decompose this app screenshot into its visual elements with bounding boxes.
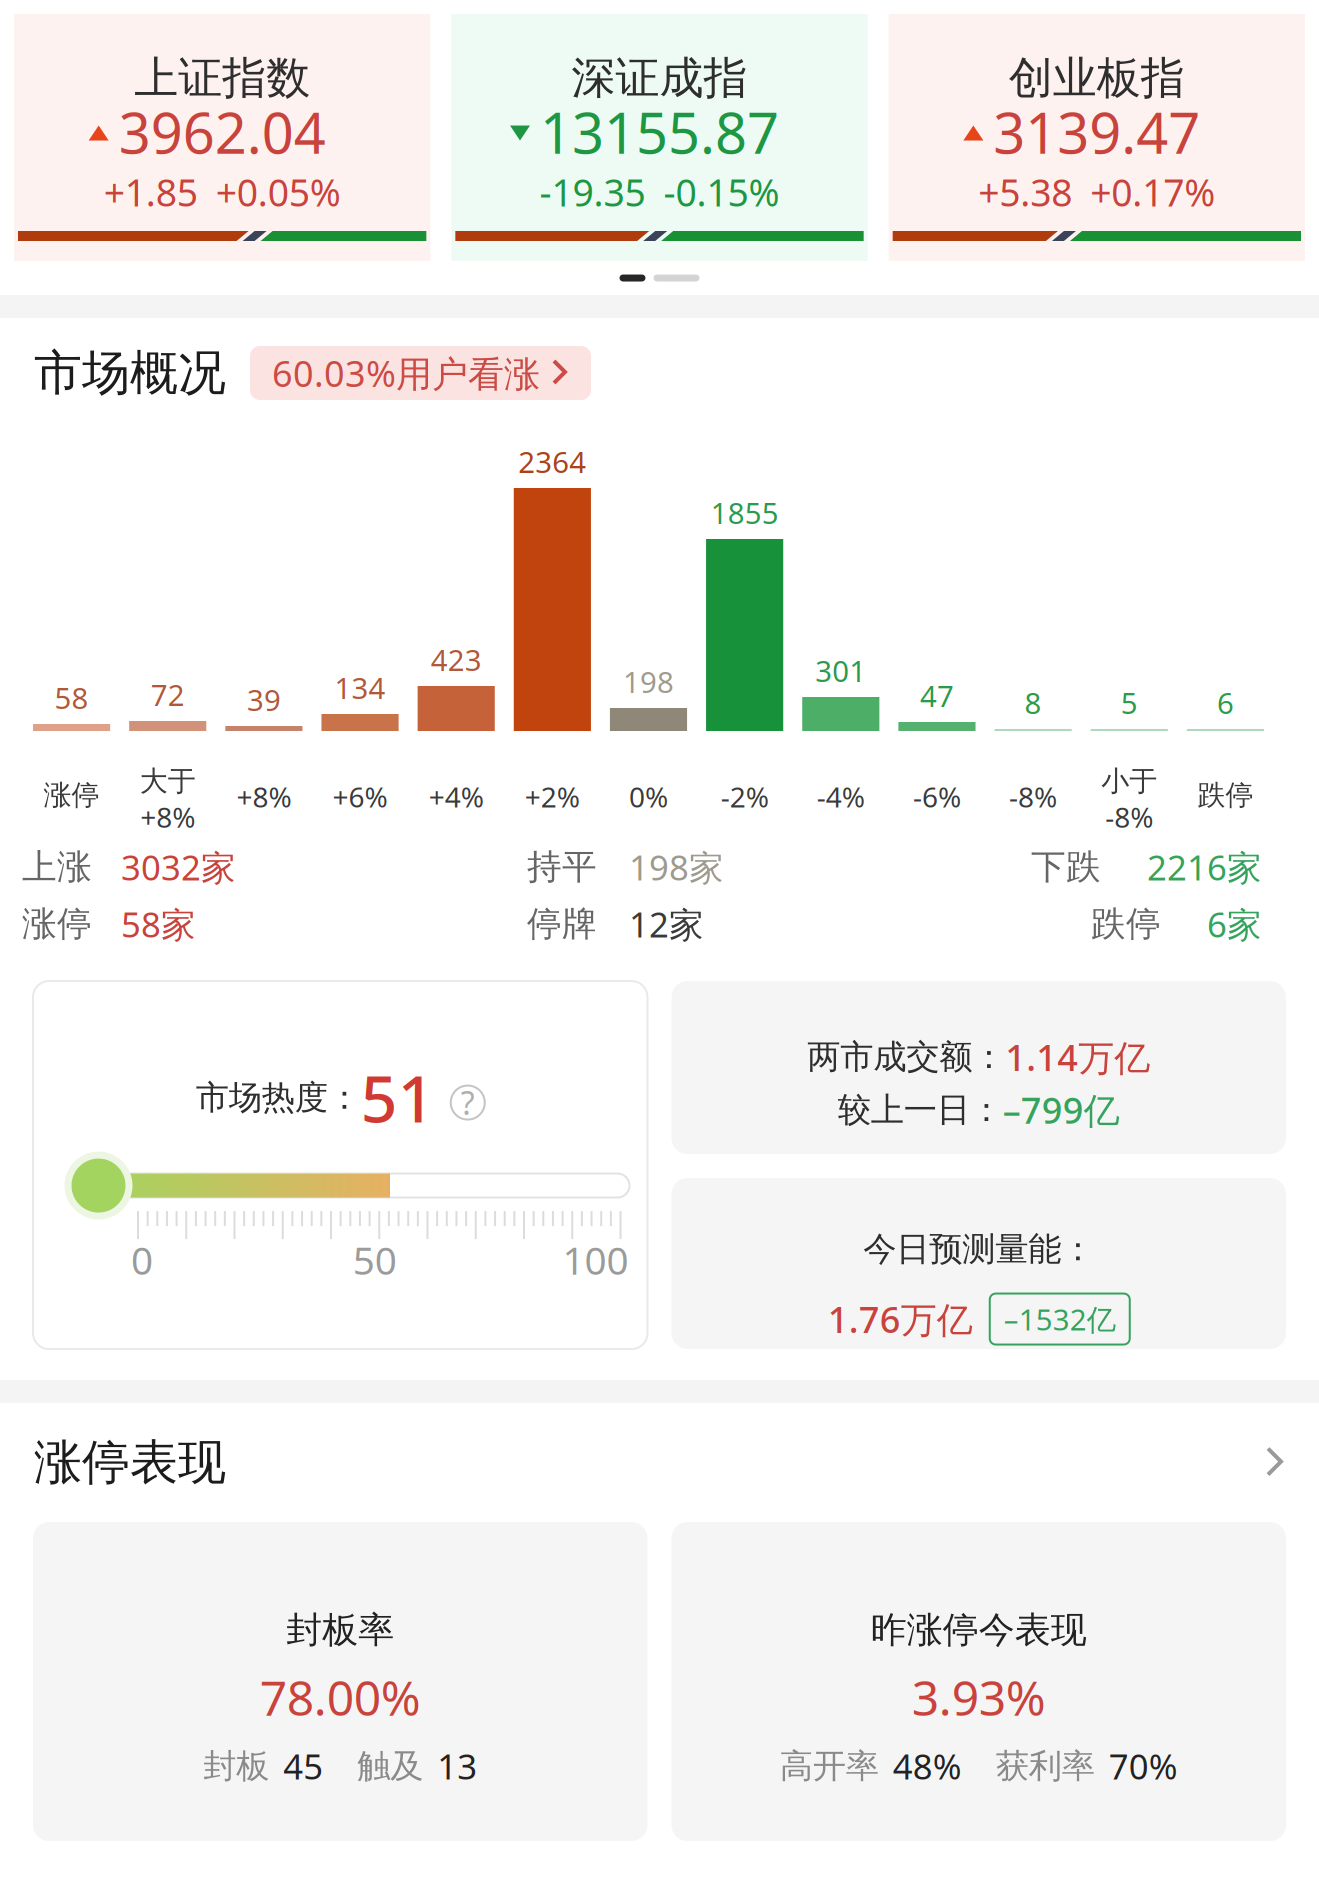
staticText: 上涨	[22, 846, 92, 888]
staticText: 48%	[893, 1743, 962, 1789]
staticText: -2%	[721, 778, 769, 815]
staticText: 市场概况	[34, 343, 226, 402]
staticText: 58家	[121, 901, 196, 947]
staticText: 较上一日：	[838, 1089, 1003, 1130]
staticText: 停牌	[527, 903, 597, 945]
staticText: 2364	[518, 442, 586, 481]
staticText: 13	[437, 1743, 477, 1789]
staticText: 12家	[629, 901, 704, 947]
staticText: ?	[461, 1081, 475, 1124]
staticText: 1855	[711, 493, 779, 532]
staticText: +8%	[140, 798, 195, 836]
staticText: –799亿	[1003, 1086, 1120, 1134]
staticText: 60.03%用户看涨	[272, 349, 540, 397]
staticText: 深证成指	[571, 51, 747, 105]
staticText: 跌停	[1091, 903, 1161, 945]
staticText: +0.05%	[216, 167, 341, 217]
staticText: 高开率	[780, 1746, 879, 1786]
staticText: 大于	[140, 764, 196, 798]
staticText: 423	[431, 640, 482, 679]
staticText: 下跌	[1031, 846, 1101, 888]
staticText: 两市成交额：	[807, 1036, 1005, 1077]
staticText: 市场热度：	[196, 1077, 361, 1118]
button[interactable]: 深证成指	[451, 14, 868, 261]
staticText: 涨停	[44, 778, 100, 812]
staticText: +4%	[429, 778, 484, 815]
staticText: 47	[920, 676, 954, 715]
staticText: 0%	[629, 778, 668, 815]
staticText: 封板率	[286, 1608, 394, 1652]
staticText: 上证指数	[134, 51, 310, 105]
staticText: -0.15%	[663, 167, 779, 217]
staticText: -19.35	[539, 167, 645, 217]
staticText: 8	[1025, 683, 1042, 722]
staticText: –1532亿	[1004, 1300, 1116, 1339]
staticText: +1.85	[104, 167, 198, 217]
staticText: -4%	[817, 778, 865, 815]
staticText: 3.93%	[912, 1665, 1046, 1729]
staticText: 51	[361, 1055, 435, 1140]
staticText: 6家	[1207, 901, 1262, 947]
staticText: 0	[131, 1234, 153, 1285]
staticText: 3032家	[121, 844, 236, 890]
staticText: 触及	[357, 1746, 423, 1786]
button[interactable]: 上证指数	[14, 14, 430, 261]
staticText: 封板	[203, 1746, 269, 1786]
staticText: 2216家	[1147, 844, 1262, 890]
button[interactable]: 封板率	[33, 1522, 647, 1841]
staticText: 今日预测量能：	[863, 1229, 1094, 1269]
staticText: 5	[1121, 683, 1138, 722]
staticText: 跌停	[1197, 778, 1253, 812]
staticText: 1.14万亿	[1005, 1033, 1150, 1081]
staticText: 获利率	[996, 1746, 1095, 1786]
staticText: 45	[283, 1743, 323, 1789]
staticText: 100	[562, 1234, 628, 1285]
staticText: 198	[623, 662, 674, 701]
staticText: 50	[353, 1234, 397, 1285]
staticText: -8%	[1105, 798, 1153, 836]
staticText: -8%	[1009, 778, 1057, 815]
button[interactable]: 60.03%用户看涨	[250, 346, 591, 400]
staticText: 78.00%	[260, 1665, 421, 1729]
staticText: 72	[151, 675, 185, 714]
button[interactable]: 昨涨停今表现	[671, 1522, 1286, 1841]
staticText: 涨停表现	[34, 1433, 226, 1492]
staticText: 39	[247, 680, 281, 719]
staticText: +2%	[525, 778, 580, 815]
staticText: -6%	[913, 778, 961, 815]
staticText: 创业板指	[1009, 51, 1185, 105]
staticText: 6	[1217, 683, 1234, 722]
staticText: 涨停	[22, 903, 92, 945]
staticText: 持平	[527, 846, 597, 888]
staticText: 70%	[1109, 1743, 1178, 1789]
staticText: 3962.04	[119, 95, 326, 169]
staticText: +6%	[332, 778, 387, 815]
staticText: 昨涨停今表现	[871, 1608, 1087, 1652]
staticText: 13155.87	[540, 95, 779, 169]
staticText: +5.38	[978, 167, 1072, 217]
staticText: +8%	[236, 778, 291, 815]
staticText: +0.17%	[1090, 167, 1215, 217]
staticText: 134	[334, 668, 385, 707]
staticText: 1.76万亿	[828, 1295, 973, 1343]
staticText: 198家	[629, 844, 724, 890]
staticText: 58	[55, 678, 89, 717]
button[interactable]: 涨停表现	[0, 1403, 1319, 1522]
staticText: 3139.47	[993, 95, 1200, 169]
staticText: 小于	[1101, 764, 1157, 798]
button[interactable]: 创业板指	[889, 14, 1305, 261]
staticText: 301	[815, 651, 866, 690]
